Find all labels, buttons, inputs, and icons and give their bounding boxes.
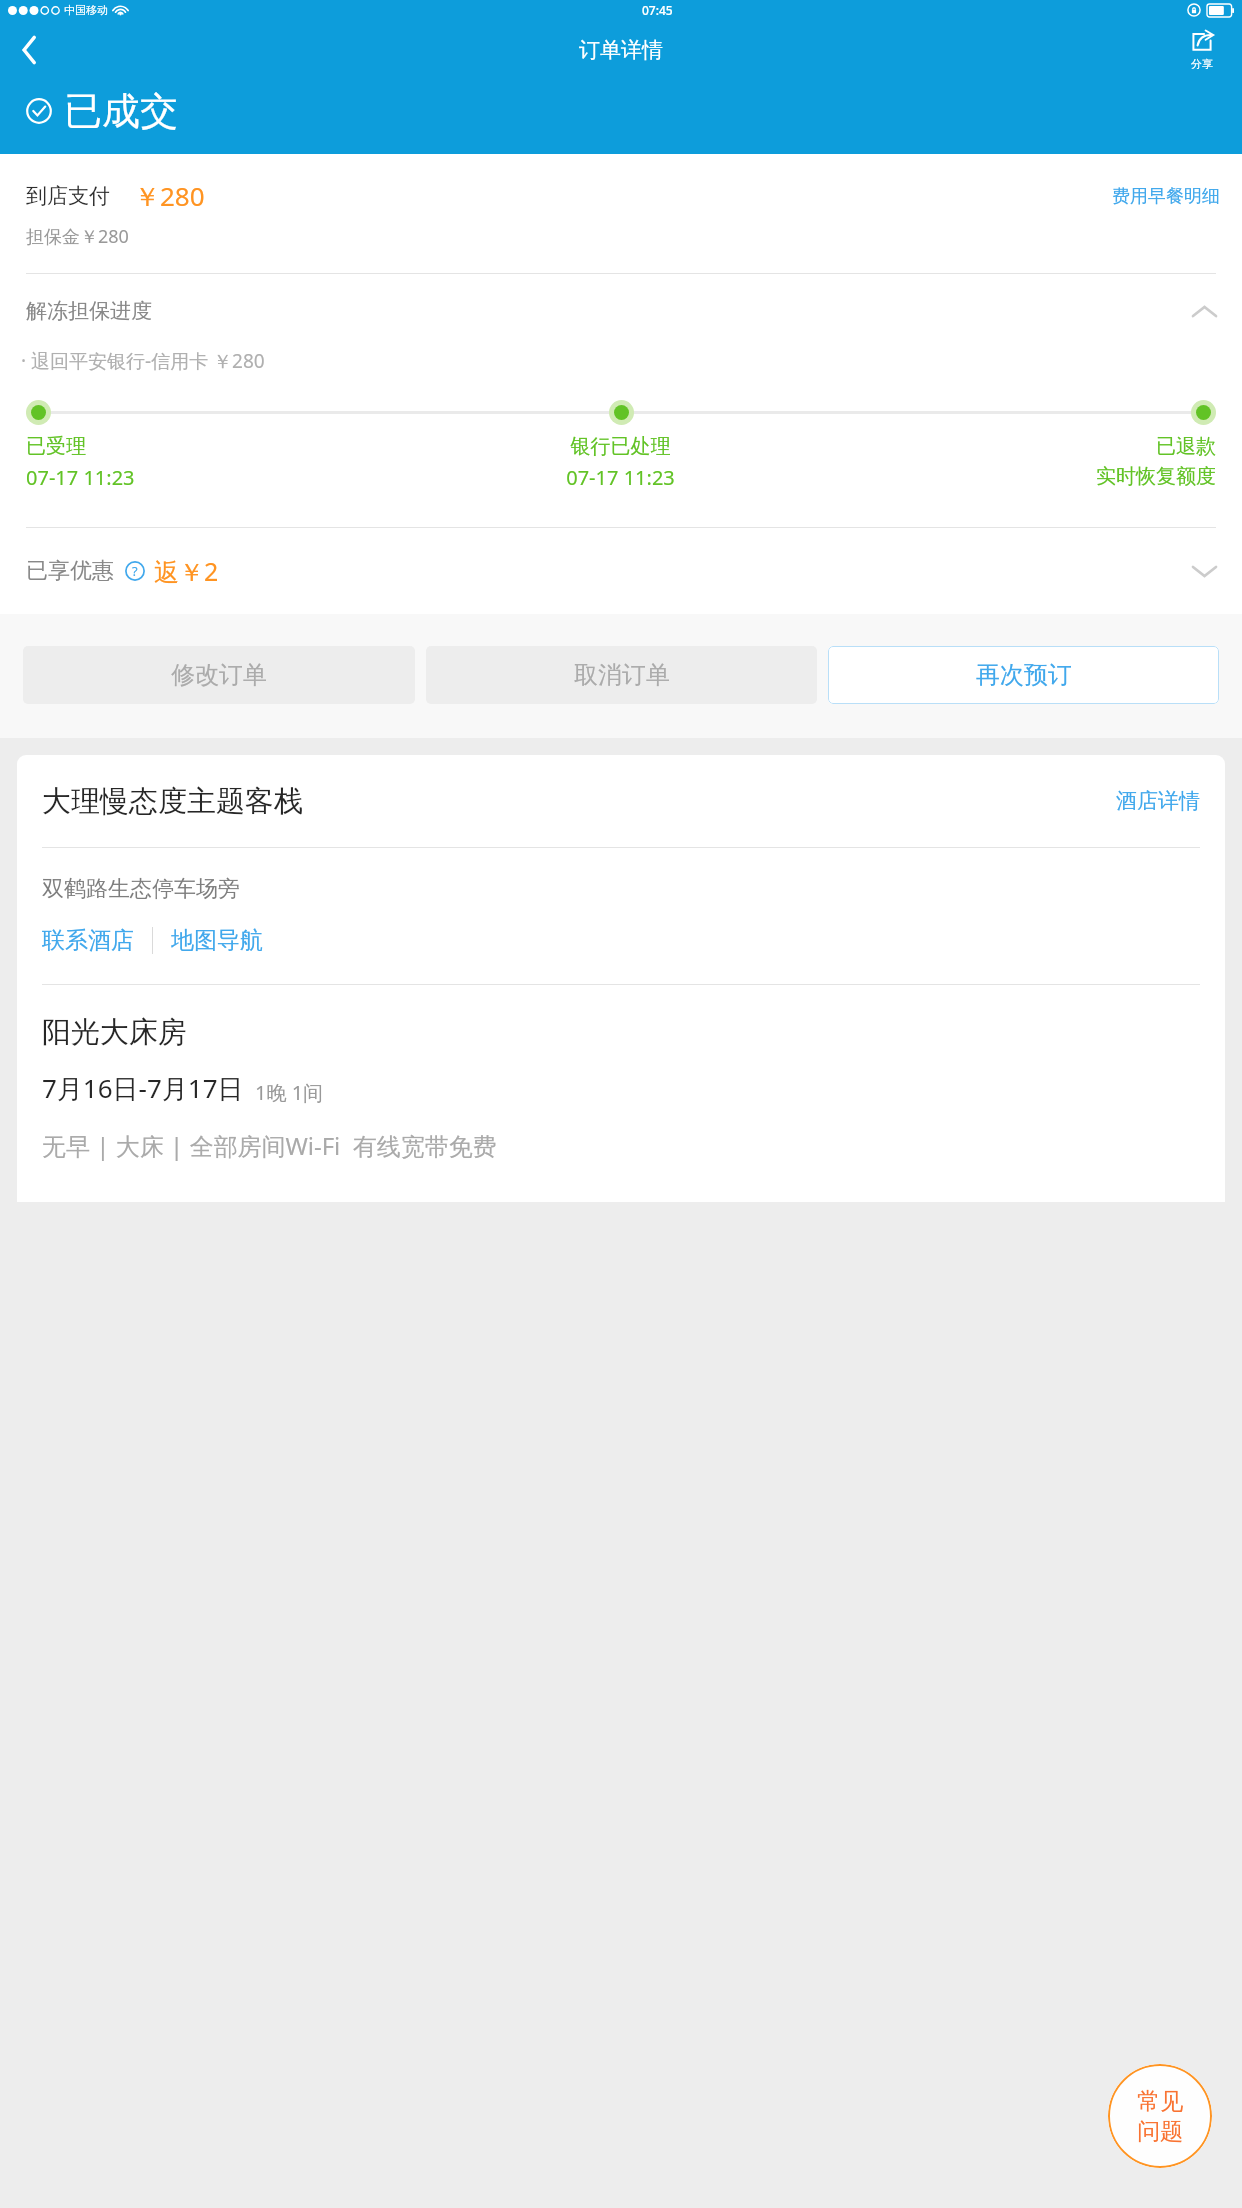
staticText: 地图导航 bbox=[171, 926, 263, 955]
staticText: 中国移动 bbox=[64, 3, 108, 17]
staticText: 详细 bbox=[1162, 179, 1198, 202]
button[interactable]: 常见 bbox=[1108, 2064, 1212, 2168]
staticText: 问题 bbox=[1137, 2117, 1183, 2146]
staticText: ? bbox=[132, 562, 138, 580]
staticText: 取消订单 bbox=[574, 660, 670, 690]
staticText: 1晚 1间 bbox=[255, 1079, 324, 1106]
button[interactable]: 再次预订 bbox=[828, 646, 1219, 704]
staticText: 已享优惠 bbox=[26, 557, 114, 585]
staticText: 常见 bbox=[1137, 2087, 1183, 2116]
staticText: 再次预订 bbox=[976, 660, 1072, 690]
staticText: 07-17 11:23 bbox=[422, 464, 819, 491]
staticText: 返￥2 bbox=[154, 554, 219, 588]
staticText: 酒店详情 bbox=[1116, 788, 1200, 814]
staticText: 修改订单 bbox=[171, 660, 267, 690]
staticText: 已成交 bbox=[64, 87, 178, 135]
staticText: 银行已处理 bbox=[422, 434, 819, 459]
button[interactable]: 地图导航 bbox=[171, 926, 263, 955]
staticText: 担保金￥280 bbox=[26, 224, 129, 249]
staticText: 联系酒店 bbox=[42, 926, 134, 955]
staticText: 分享 bbox=[1191, 57, 1213, 71]
button[interactable]: 联系酒店 bbox=[42, 926, 134, 955]
button[interactable]: 费用早餐明细 bbox=[1112, 185, 1220, 208]
staticText: 已退款 bbox=[819, 434, 1216, 459]
staticText: 到店支付 bbox=[26, 183, 110, 209]
staticText: ￥280 bbox=[134, 178, 205, 214]
staticText: 感谢您的入住，欢迎点评该酒店 bbox=[70, 179, 322, 202]
button[interactable]: 取消订单 bbox=[426, 646, 817, 704]
button[interactable]: 分享 bbox=[1162, 20, 1242, 80]
staticText: 订单详情 bbox=[579, 37, 663, 63]
staticText: 无早 | 大床 | 全部房间Wi-Fi 有线宽带免费 bbox=[42, 1129, 497, 1162]
staticText: 7月16日-7月17日 bbox=[42, 1070, 244, 1106]
button[interactable]: 已享优惠 bbox=[26, 528, 1216, 614]
button[interactable]: 感谢您的入住，欢迎点评该酒店 bbox=[70, 179, 1220, 202]
staticText: 07-17 11:23 bbox=[26, 464, 422, 491]
staticText: 阳光大床房 bbox=[42, 1014, 187, 1051]
button[interactable]: 解冻担保进度 bbox=[26, 274, 1216, 348]
staticText: · 退回平安银行-信用卡 ￥280 bbox=[21, 348, 265, 374]
button[interactable]: 酒店详情 bbox=[1116, 788, 1200, 814]
staticText: 解冻担保进度 bbox=[26, 298, 152, 324]
staticText: 大理慢态度主题客栈 bbox=[42, 783, 303, 820]
staticText: 07:45 bbox=[642, 2, 673, 18]
staticText: 费用早餐明细 bbox=[1112, 185, 1220, 208]
staticText: 双鹤路生态停车场旁 bbox=[42, 875, 240, 903]
staticText: 已受理 bbox=[26, 434, 422, 459]
staticText: 实时恢复额度 bbox=[819, 464, 1216, 489]
button[interactable]: 修改订单 bbox=[23, 646, 415, 704]
button[interactable]: 返回 bbox=[0, 20, 58, 80]
